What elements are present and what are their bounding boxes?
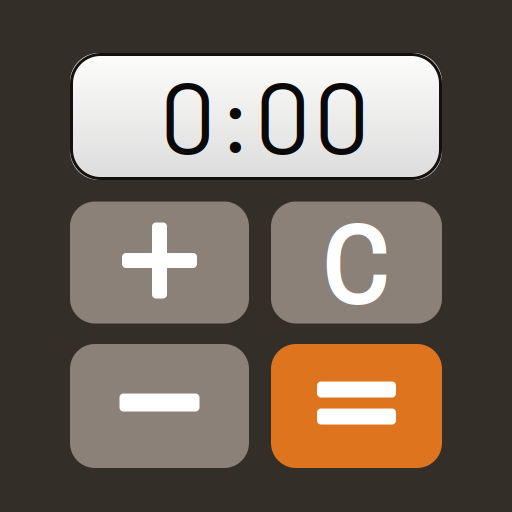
staticText: C bbox=[322, 185, 390, 340]
button[interactable]: C bbox=[271, 201, 442, 323]
button[interactable]: Subtract bbox=[70, 344, 249, 468]
staticText: 0:00 bbox=[159, 54, 370, 174]
button[interactable]: Equals bbox=[271, 344, 442, 468]
button[interactable]: Add bbox=[70, 201, 249, 323]
